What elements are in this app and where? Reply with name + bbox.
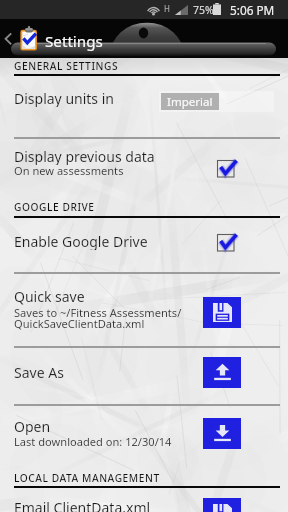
- button[interactable]: Email ClientData.xml: [0, 494, 288, 512]
- staticText: Quick save: [14, 287, 85, 305]
- staticText: Settings: [45, 31, 103, 52]
- button[interactable]: Display previous data: [0, 144, 288, 180]
- button[interactable]: Save As: [203, 357, 241, 388]
- staticText: LOCAL DATA MANAGEMENT: [14, 471, 160, 485]
- staticText: GENERAL SETTINGS: [14, 59, 119, 73]
- staticText: GOOGLE DRIVE: [14, 200, 95, 214]
- button[interactable]: Toggle setting: [215, 156, 241, 181]
- button[interactable]: Navigate up: [0, 19, 19, 58]
- staticText: Saves to ~/Fitness Assessments/: [14, 305, 182, 319]
- staticText: Open: [14, 417, 51, 435]
- button[interactable]: Open: [0, 414, 288, 450]
- staticText: H: [164, 3, 170, 14]
- staticText: Display previous data: [14, 147, 155, 165]
- staticText: Email ClientData.xml: [14, 498, 151, 512]
- button[interactable]: Email ClientData.xml: [203, 498, 241, 512]
- staticText: QuickSaveClientData.xml: [14, 316, 145, 330]
- staticText: 75%: [193, 3, 214, 17]
- button[interactable]: Settings: [19, 19, 104, 58]
- button[interactable]: Enable Google Drive: [0, 228, 288, 256]
- button[interactable]: Save As: [0, 358, 288, 386]
- button[interactable]: Quick save: [203, 297, 241, 328]
- staticText: Last downloaded on: 12/30/14: [14, 434, 172, 448]
- button[interactable]: Display units in: [0, 80, 288, 116]
- button[interactable]: Imperial: [161, 93, 219, 110]
- staticText: Display units in: [14, 89, 114, 107]
- staticText: 5:06 PM: [230, 2, 275, 18]
- button[interactable]: Toggle setting: [215, 230, 241, 255]
- button[interactable]: Open: [203, 418, 241, 449]
- staticText: On new assessments: [14, 163, 124, 177]
- staticText: Save As: [14, 363, 64, 381]
- staticText: Imperial: [167, 94, 213, 110]
- staticText: Enable Google Drive: [14, 232, 148, 250]
- button[interactable]: Quick save: [0, 284, 288, 332]
